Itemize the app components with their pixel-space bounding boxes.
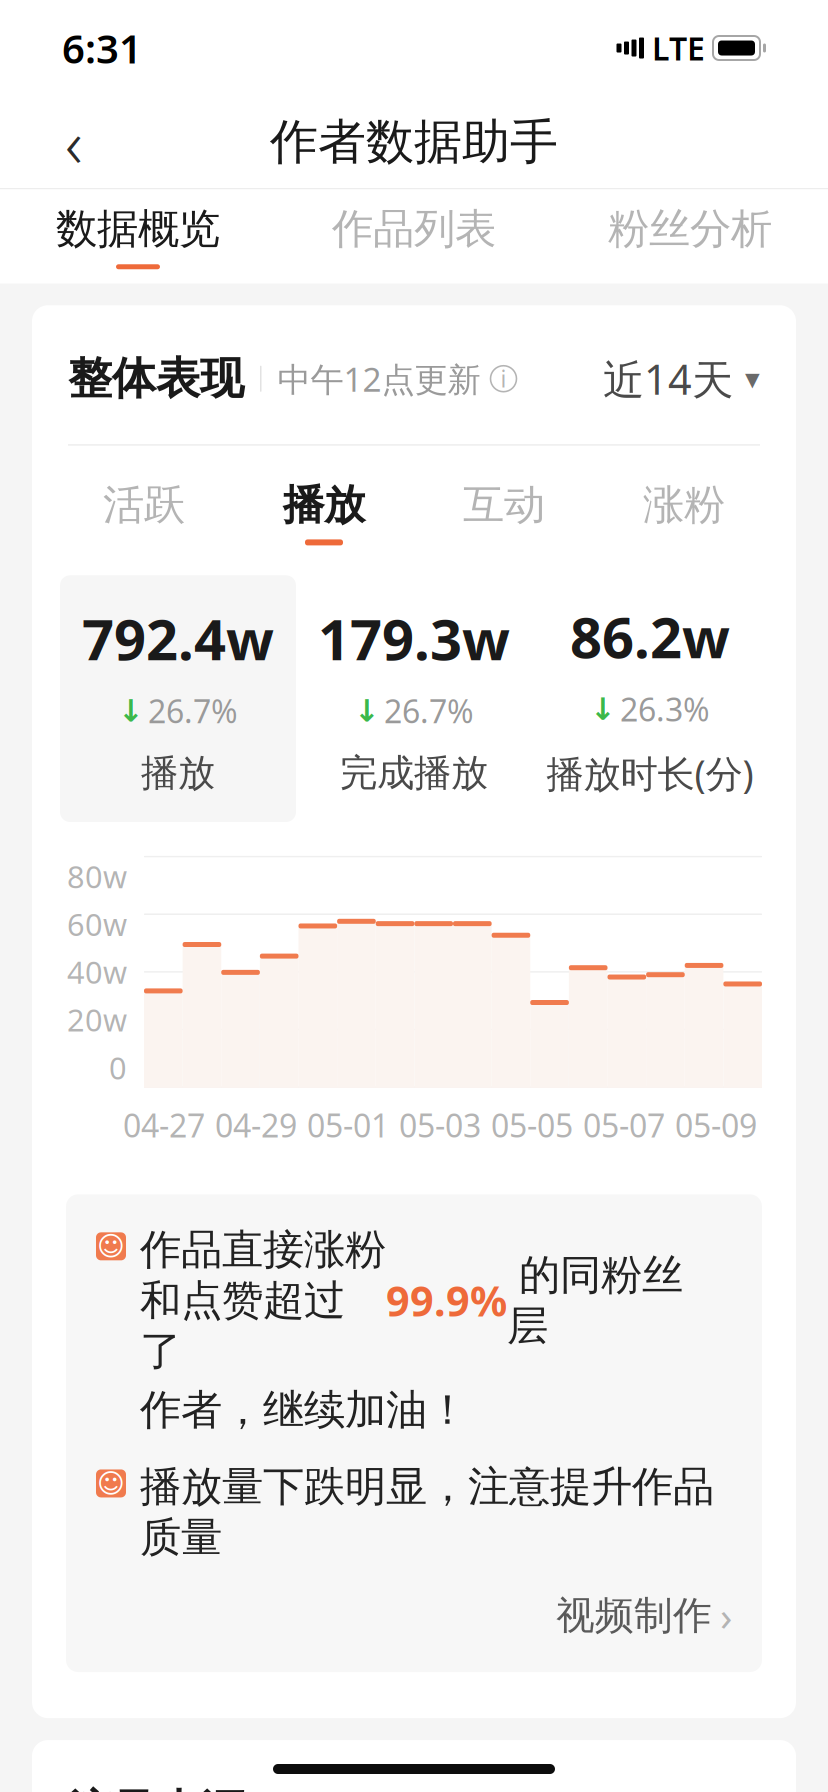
staticText: 792.4w — [82, 601, 274, 676]
staticText: 05-03 — [399, 1104, 481, 1146]
button[interactable]: 涨粉 — [594, 480, 774, 545]
staticText: 86.2w — [570, 599, 730, 674]
button[interactable]: 粉丝分析 — [552, 203, 828, 283]
button[interactable]: 数据概览 — [0, 203, 276, 283]
staticText: ☺ — [97, 1468, 125, 1499]
staticText: 视频制作 — [556, 1592, 712, 1639]
button[interactable]: 互动 — [414, 480, 594, 545]
staticText: 播放 — [283, 480, 365, 530]
staticText: ☺ — [97, 1231, 125, 1261]
staticText: ↓ — [590, 692, 616, 726]
staticText: 粉丝分析 — [608, 203, 772, 254]
button[interactable]: 作品列表 — [276, 203, 552, 283]
staticText: 26.7% — [384, 690, 474, 732]
staticText: 05-07 — [583, 1104, 665, 1146]
staticText: 播放量下跌明显，注意提升作品质量 — [140, 1461, 714, 1563]
button[interactable]: 792.4w — [60, 575, 296, 822]
staticText: 40w — [67, 951, 127, 992]
button[interactable]: Back — [32, 100, 116, 184]
staticText: 26.3% — [620, 688, 710, 730]
staticText: 179.3w — [318, 601, 510, 676]
staticText: 作者数据助手 — [270, 112, 558, 171]
staticText: 播放时长(分) — [546, 748, 753, 798]
staticText: 播放 — [141, 750, 215, 796]
staticText: 05-05 — [491, 1104, 573, 1146]
staticText: 04-29 — [215, 1104, 297, 1146]
staticText: 的同粉丝层 — [507, 1250, 683, 1351]
staticText: 05-09 — [675, 1104, 757, 1146]
staticText: 作者，继续加油！ — [140, 1385, 468, 1435]
staticText: ▾ — [745, 362, 760, 395]
staticText: ↓ — [118, 693, 144, 728]
button[interactable]: 近14天 — [603, 351, 760, 406]
staticText: 完成播放 — [340, 750, 488, 796]
staticText: 数据概览 — [56, 203, 220, 254]
staticText: 涨粉 — [643, 480, 725, 530]
button[interactable]: 86.2w — [532, 573, 768, 824]
button[interactable]: 视频制作 — [556, 1589, 732, 1642]
staticText: i — [500, 364, 506, 394]
staticText: LTE — [652, 27, 705, 69]
staticText: ‹ — [65, 98, 83, 186]
staticText: 活跃 — [103, 480, 185, 530]
staticText: 0 — [109, 1047, 127, 1088]
staticText: 近14天 — [603, 351, 733, 406]
staticText: 6:31 — [62, 21, 142, 74]
staticText: 作品列表 — [332, 203, 496, 254]
staticText: 互动 — [463, 480, 545, 530]
staticText: 60w — [67, 904, 127, 944]
staticText: 整体表现 — [68, 352, 244, 406]
staticText: 26.7% — [148, 690, 238, 732]
staticText: 80w — [67, 856, 127, 897]
button[interactable]: 活跃 — [54, 480, 234, 545]
staticText: › — [720, 1589, 732, 1642]
staticText: 作品直接涨粉和点赞超过了 — [140, 1224, 386, 1377]
staticText: 流量来源 — [68, 1784, 244, 1792]
staticText: 中午12点更新 — [277, 357, 480, 401]
button[interactable]: 播放 — [234, 480, 414, 545]
staticText: ↓ — [354, 693, 380, 728]
button[interactable]: 179.3w — [296, 575, 532, 822]
staticText: 04-27 — [123, 1104, 205, 1146]
staticText: 05-01 — [307, 1104, 389, 1146]
staticText: 20w — [67, 999, 127, 1040]
staticText: 99.9% — [386, 1273, 507, 1328]
